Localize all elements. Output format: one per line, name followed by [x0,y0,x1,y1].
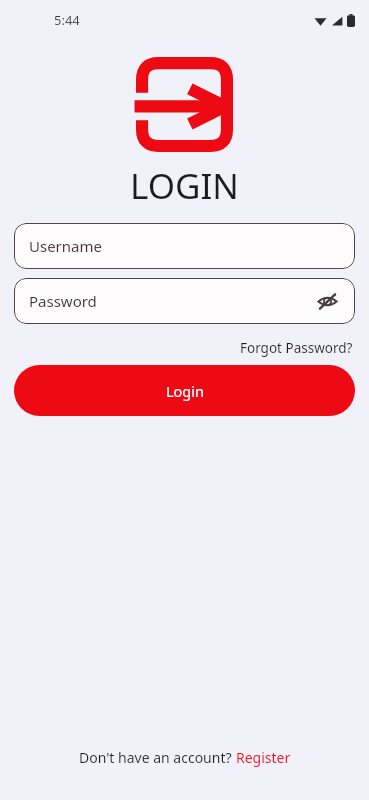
button[interactable]: Login [14,365,355,416]
staticText: Login [166,381,204,401]
staticText: Don't have an account? [79,748,236,767]
button[interactable]: Password [14,278,355,324]
staticText: Username [29,236,102,256]
button[interactable]: Forgot Password? [238,337,355,359]
button[interactable]: Username [14,223,355,269]
staticText: 5:44 [54,11,80,29]
staticText: Register [236,748,291,767]
button[interactable]: Register [236,748,291,767]
button[interactable]: Show password [312,286,342,316]
other: Login [136,57,233,152]
staticText: Forgot Password? [240,339,353,357]
staticText: LOGIN [130,162,239,210]
staticText: Password [29,291,97,311]
